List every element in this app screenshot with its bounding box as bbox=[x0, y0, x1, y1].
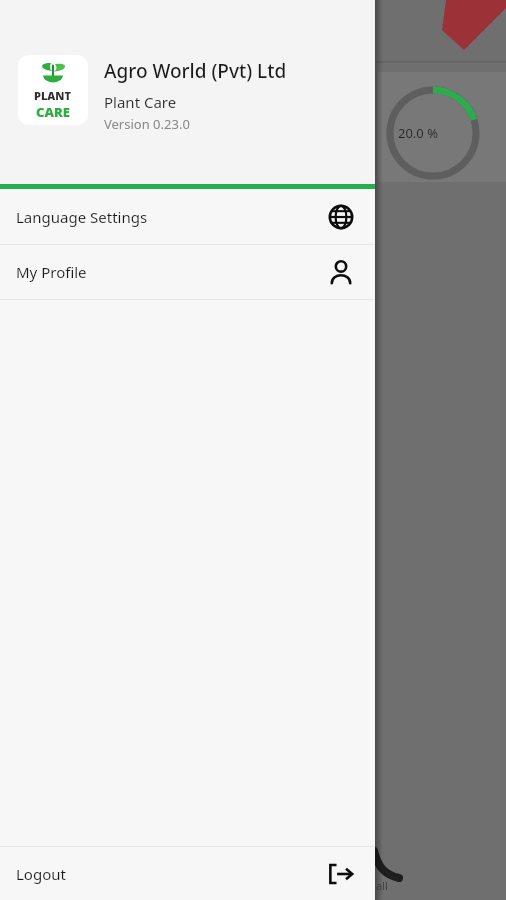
button[interactable]: My Profile bbox=[0, 245, 375, 299]
staticText: 20.0 % bbox=[398, 124, 438, 142]
staticText: PLANT bbox=[34, 88, 72, 103]
button[interactable]: Language Settings bbox=[0, 189, 375, 244]
staticText: Call bbox=[369, 878, 388, 893]
staticText: CARE bbox=[36, 103, 70, 121]
staticText: Logout bbox=[16, 864, 66, 884]
staticText: My Profile bbox=[16, 262, 87, 282]
other: Language Settings bbox=[327, 203, 355, 231]
staticText: Version 0.23.0 bbox=[104, 115, 190, 133]
staticText: Plant Care bbox=[104, 92, 177, 112]
other: My Profile bbox=[327, 258, 355, 286]
staticText: Language Settings bbox=[16, 207, 148, 227]
other: Logout bbox=[327, 860, 355, 888]
button[interactable]: Logout bbox=[0, 847, 375, 900]
staticText: Agro World (Pvt) Ltd bbox=[104, 58, 287, 84]
